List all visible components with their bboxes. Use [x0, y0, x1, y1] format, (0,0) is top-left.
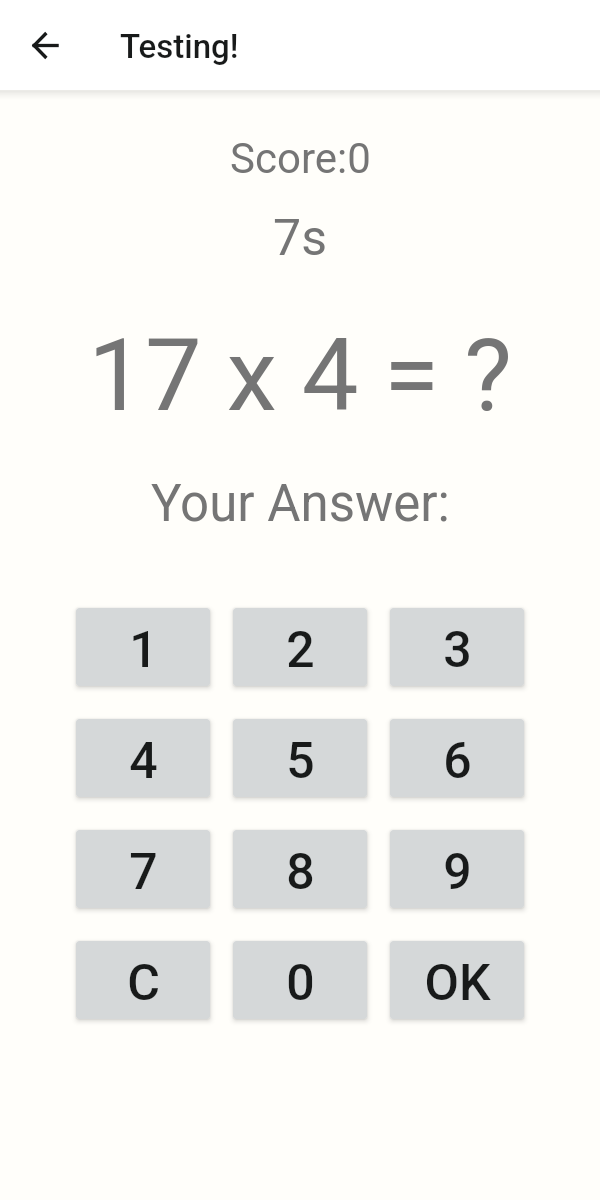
staticText: 17 x 4 = ? [88, 316, 512, 434]
staticText: Testing! [120, 27, 239, 66]
button[interactable]: 6 [390, 719, 524, 797]
button[interactable]: 3 [390, 608, 524, 686]
button[interactable]: 8 [233, 830, 367, 908]
staticText: 7 [129, 843, 158, 902]
button[interactable]: 1 [76, 608, 210, 686]
staticText: 6 [443, 732, 472, 791]
staticText: Your Answer: [151, 474, 450, 534]
staticText: 1 [129, 621, 158, 680]
staticText: 0 [286, 954, 315, 1013]
staticText: 7s [273, 209, 327, 268]
button[interactable]: OK [390, 941, 524, 1019]
button[interactable]: C [76, 941, 210, 1019]
staticText: 2 [286, 621, 315, 680]
button[interactable]: 9 [390, 830, 524, 908]
staticText: C [127, 954, 160, 1013]
staticText: 3 [443, 621, 472, 680]
staticText: 4 [129, 732, 158, 791]
button[interactable]: 4 [76, 719, 210, 797]
staticText: OK [424, 954, 491, 1013]
button[interactable]: 2 [233, 608, 367, 686]
button[interactable]: Back [13, 13, 77, 77]
staticText: 5 [286, 732, 315, 791]
button[interactable]: 7 [76, 830, 210, 908]
staticText: 9 [443, 843, 472, 902]
staticText: 8 [286, 843, 315, 902]
staticText: Score:0 [230, 134, 371, 183]
button[interactable]: 0 [233, 941, 367, 1019]
button[interactable]: 5 [233, 719, 367, 797]
